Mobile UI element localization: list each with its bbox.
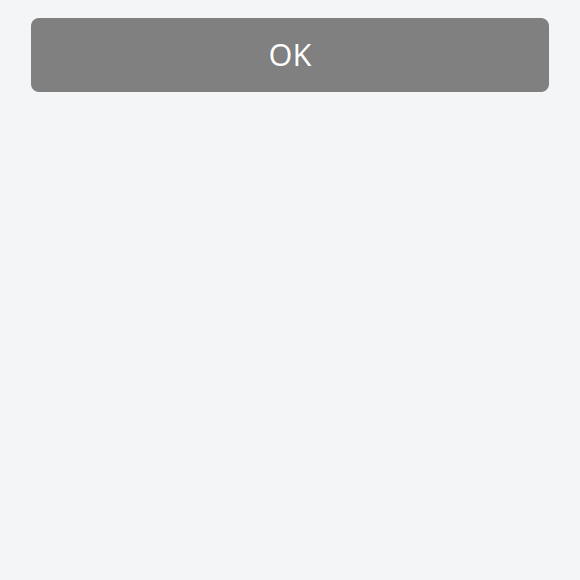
staticText: OK [268,34,311,74]
button[interactable]: OK [31,18,549,92]
